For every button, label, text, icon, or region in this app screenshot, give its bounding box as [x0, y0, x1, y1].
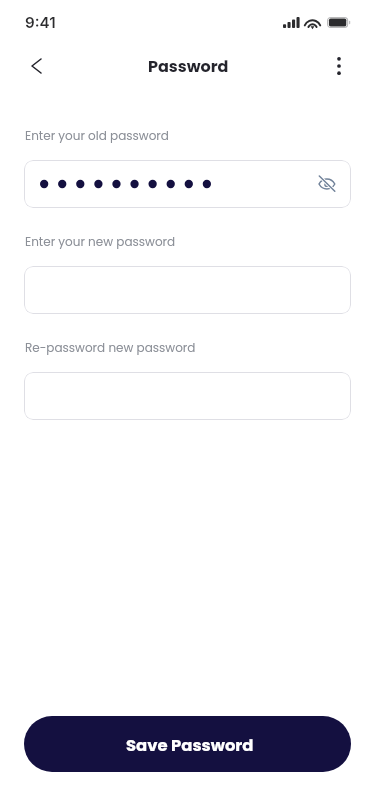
staticText: 9:41	[25, 13, 56, 31]
button[interactable]: More options	[319, 46, 359, 86]
staticText: Save Password	[126, 734, 254, 757]
staticText: Enter your old password	[25, 127, 169, 144]
button[interactable]: Save Password	[24, 716, 351, 772]
button[interactable]: Back	[16, 46, 56, 86]
staticText: Re-password new password	[25, 339, 196, 356]
staticText: Password	[148, 55, 229, 77]
staticText: Enter your new password	[25, 233, 176, 250]
button[interactable]	[24, 372, 351, 420]
button[interactable]	[24, 266, 351, 314]
button[interactable]: Show password	[311, 168, 343, 200]
button[interactable]: Show password	[24, 160, 351, 208]
